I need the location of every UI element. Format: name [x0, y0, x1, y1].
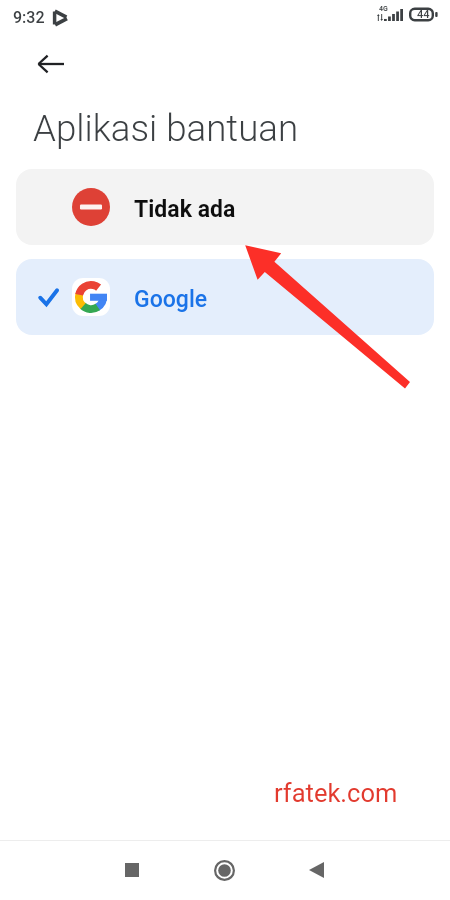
staticText: Aplikasi bantuan [33, 107, 299, 150]
button[interactable]: Home [202, 848, 246, 892]
button[interactable]: Recent apps [110, 848, 154, 892]
staticText: 4G [379, 5, 388, 13]
staticText: 9:32 [13, 8, 45, 27]
button[interactable]: Google [16, 259, 434, 335]
button[interactable]: Back [29, 42, 73, 86]
button[interactable]: Back [294, 848, 338, 892]
staticText: Tidak ada [134, 196, 236, 223]
staticText: 44 [417, 8, 430, 21]
staticText: rfatek.com [274, 778, 398, 808]
staticText: Google [134, 286, 208, 313]
button[interactable]: Tidak ada [16, 169, 434, 245]
